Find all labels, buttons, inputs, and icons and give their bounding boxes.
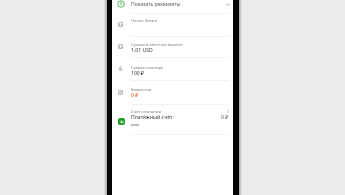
staticText: 1,01 USD: [131, 47, 153, 54]
staticText: Логин Steam: [131, 17, 158, 23]
staticText: Показать реквизиты: [131, 1, 181, 8]
staticText: Сумма платежа: [131, 64, 163, 70]
other: Expand: [226, 3, 230, 6]
other: Choose account: [227, 110, 229, 113]
button[interactable]: Показать реквизиты: [112, 0, 233, 13]
staticText: 100 ₽: [131, 70, 145, 77]
staticText: 0 ₽: [221, 114, 229, 121]
staticText: 0 ₽: [131, 92, 139, 99]
staticText: Комиссия: [131, 86, 152, 92]
staticText: Счёт списания: [131, 108, 161, 114]
staticText: Сумма в местной валюте: [131, 41, 183, 47]
staticText: Платёжный счёт: [131, 114, 173, 121]
